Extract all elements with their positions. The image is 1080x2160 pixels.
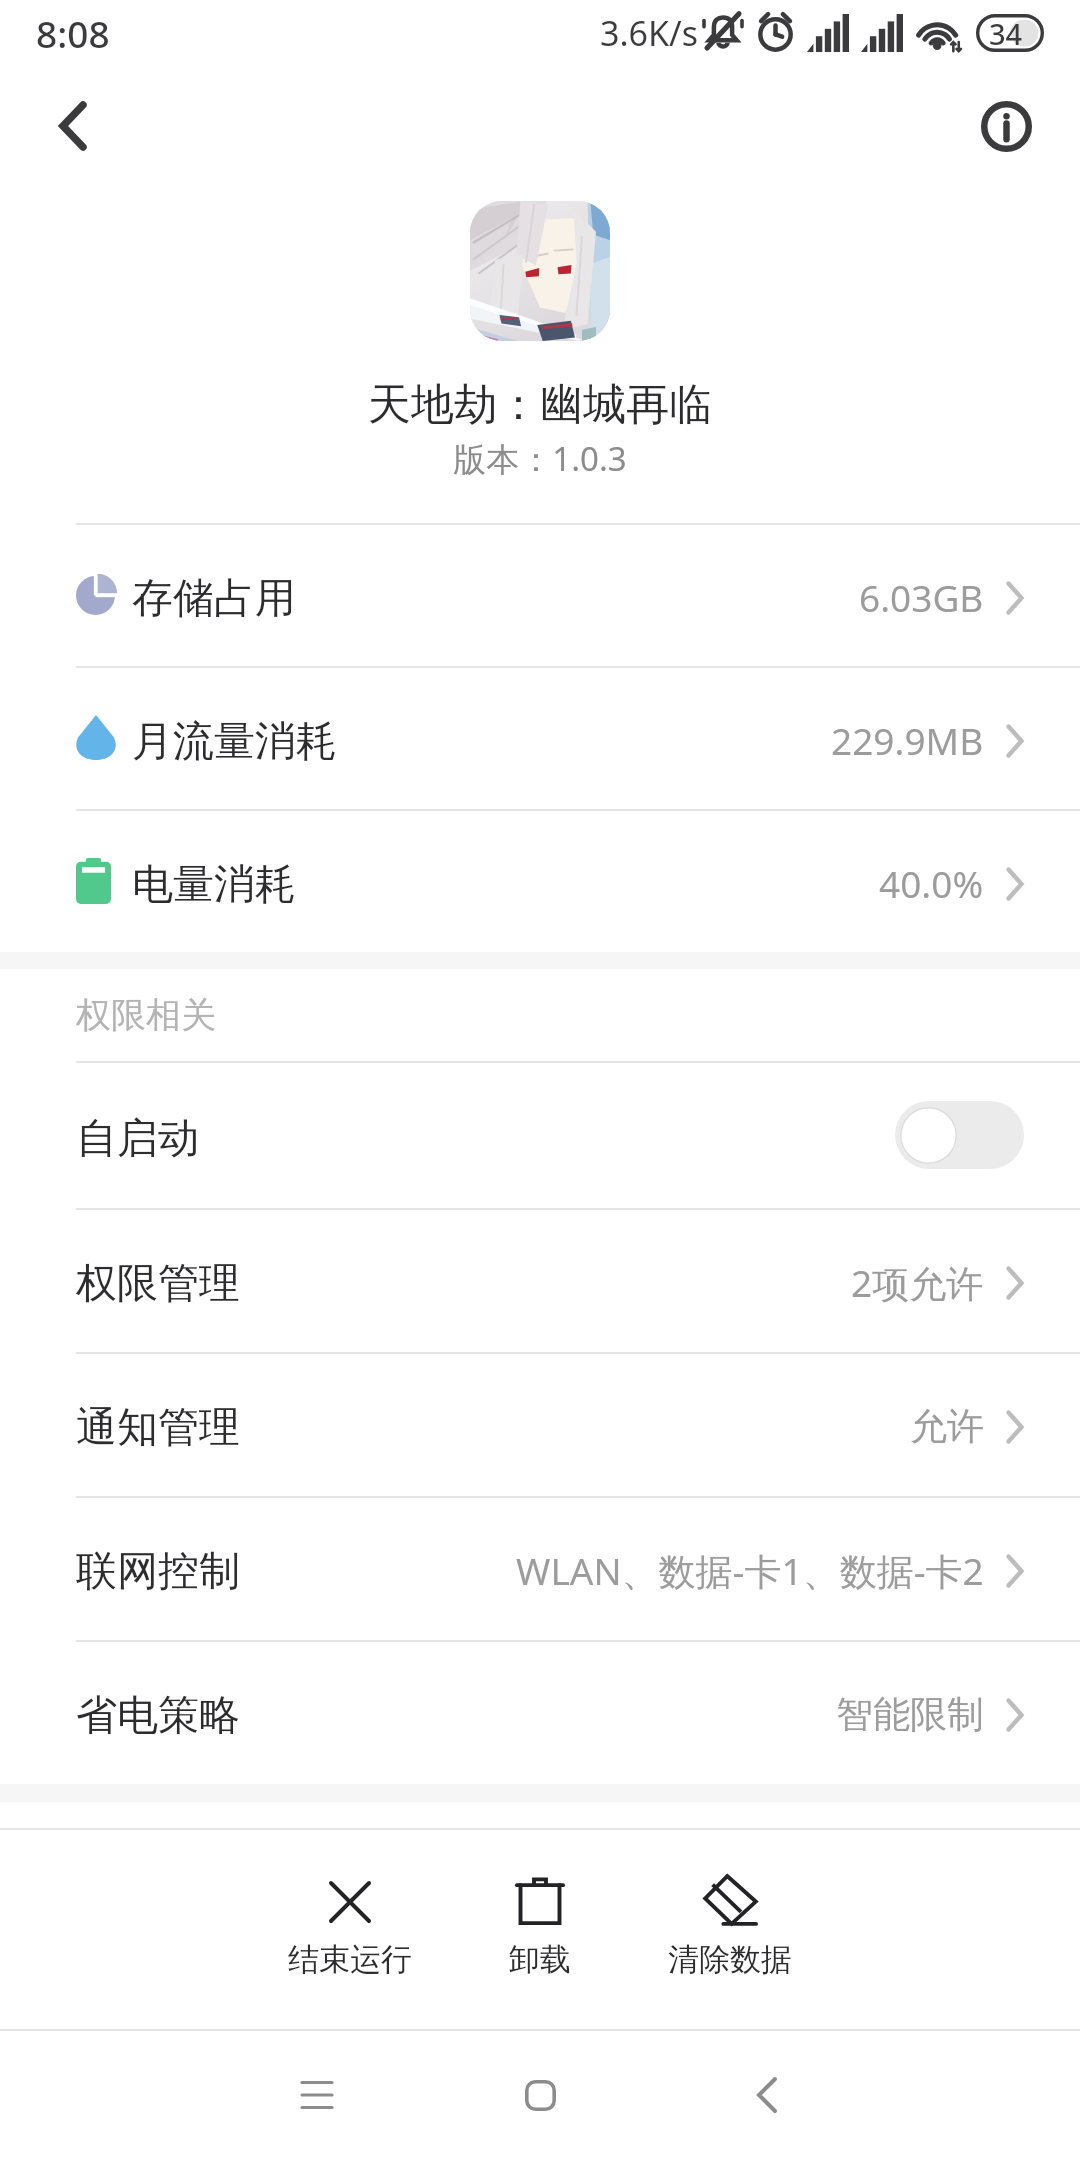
button[interactable]: 结束运行 — [255, 1830, 445, 1979]
button[interactable]: Home — [460, 2030, 620, 2160]
staticText: 电量消耗 — [132, 859, 296, 911]
button[interactable]: 通知管理 — [0, 1352, 1080, 1496]
button[interactable]: Back — [31, 84, 115, 168]
staticText: 6.03GB — [859, 572, 984, 622]
staticText: 卸载 — [509, 1940, 571, 1979]
button[interactable]: 电量消耗 — [0, 809, 1080, 952]
staticText: 结束运行 — [288, 1940, 412, 1979]
staticText: 天地劫：幽城再临 — [368, 378, 712, 432]
button[interactable]: 存储占用 — [0, 523, 1080, 666]
staticText: 版本：1.0.3 — [453, 436, 627, 481]
staticText: 联网控制 — [76, 1546, 240, 1598]
staticText: 月流量消耗 — [132, 716, 337, 768]
staticText: 3.6K/s — [600, 10, 698, 56]
staticText: 智能限制 — [836, 1691, 984, 1738]
button[interactable]: 清除数据 — [635, 1830, 825, 1979]
button[interactable]: 权限管理 — [0, 1208, 1080, 1352]
button[interactable]: 省电策略 — [0, 1640, 1080, 1784]
staticText: 权限管理 — [76, 1258, 240, 1310]
staticText: 40.0% — [879, 858, 984, 908]
button[interactable]: 自启动 — [0, 1061, 1080, 1208]
staticText: 8:08 — [36, 8, 110, 58]
staticText: 存储占用 — [132, 573, 296, 625]
staticText: 229.9MB — [831, 715, 984, 765]
staticText: WLAN、数据-卡1、数据-卡2 — [516, 1545, 984, 1596]
staticText: 权限相关 — [76, 993, 216, 1037]
staticText: 允许 — [910, 1403, 984, 1450]
button[interactable]: 月流量消耗 — [0, 666, 1080, 809]
button[interactable]: 联网控制 — [0, 1496, 1080, 1640]
staticText: 省电策略 — [76, 1690, 240, 1742]
staticText: 2项允许 — [851, 1257, 984, 1308]
button[interactable]: Back — [687, 2030, 847, 2160]
staticText: 自启动 — [76, 1113, 199, 1165]
button[interactable]: 卸载 — [445, 1830, 635, 1979]
button[interactable]: Recents — [237, 2030, 397, 2160]
staticText: 通知管理 — [76, 1402, 240, 1454]
staticText: 清除数据 — [668, 1940, 792, 1979]
button[interactable]: App info — [964, 84, 1048, 168]
staticText: 34 — [989, 14, 1023, 52]
